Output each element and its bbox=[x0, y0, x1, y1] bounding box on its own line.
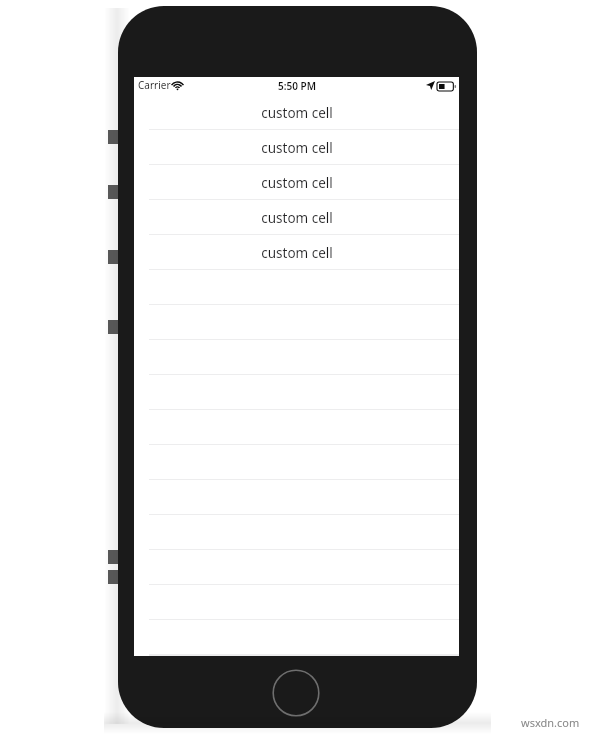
staticText: custom cell bbox=[261, 104, 333, 122]
staticText: custom cell bbox=[261, 209, 333, 227]
staticText: custom cell bbox=[261, 244, 333, 262]
button[interactable]: custom cell bbox=[134, 165, 459, 200]
button[interactable]: custom cell bbox=[134, 200, 459, 235]
button[interactable] bbox=[134, 655, 459, 656]
button[interactable]: custom cell bbox=[134, 95, 459, 130]
button[interactable]: Home bbox=[272, 669, 320, 717]
staticText: 5:50 PM bbox=[278, 79, 316, 93]
button[interactable]: custom cell bbox=[134, 130, 459, 165]
staticText: Carrier bbox=[138, 78, 171, 92]
button[interactable]: custom cell bbox=[134, 235, 459, 270]
staticText: custom cell bbox=[261, 174, 333, 192]
staticText: custom cell bbox=[261, 139, 333, 157]
staticText: wsxdn.com bbox=[521, 715, 580, 730]
